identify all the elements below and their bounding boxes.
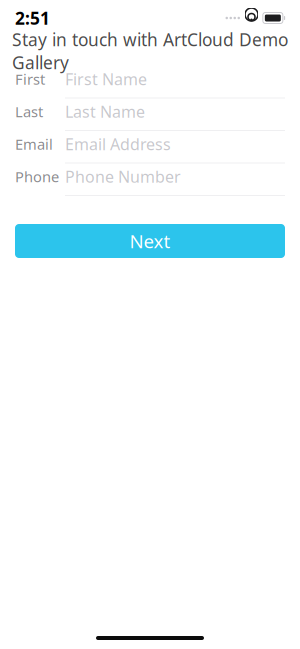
staticText: Phone Number bbox=[65, 166, 181, 187]
staticText: Email bbox=[15, 134, 53, 154]
button[interactable]: First bbox=[15, 66, 285, 98]
staticText: Email Address bbox=[65, 133, 171, 155]
staticText: First bbox=[15, 69, 45, 89]
button[interactable]: Phone bbox=[15, 163, 285, 196]
staticText: First Name bbox=[65, 68, 147, 90]
staticText: 2:51 bbox=[15, 6, 50, 29]
staticText: Last Name bbox=[65, 101, 145, 122]
button[interactable]: Last bbox=[15, 98, 285, 131]
staticText: Phone bbox=[15, 167, 59, 186]
staticText: Last bbox=[15, 102, 43, 121]
staticText: Stay in touch with ArtCloud Demo Gallery bbox=[12, 28, 288, 74]
staticText: Next bbox=[129, 229, 170, 253]
button[interactable]: Next bbox=[15, 224, 285, 258]
button[interactable]: Email bbox=[15, 131, 285, 163]
